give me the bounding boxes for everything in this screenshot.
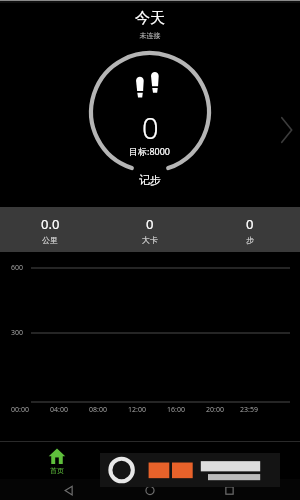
staticText: 12:00: [128, 405, 146, 415]
staticText: 0.0: [41, 215, 60, 233]
staticText: 记步: [139, 173, 161, 187]
staticText: 23:59: [240, 405, 258, 415]
staticText: 00:00: [11, 405, 29, 415]
staticText: 步: [246, 235, 254, 245]
button[interactable]: 首页: [42, 445, 72, 477]
staticText: 大卡: [142, 235, 158, 245]
staticText: 0: [246, 215, 254, 233]
staticText: 300: [11, 328, 24, 338]
staticText: 今天: [0, 9, 300, 28]
staticText: 未连接: [0, 31, 300, 40]
staticText: 公里: [42, 235, 58, 245]
button[interactable]: Step goal ring: [89, 51, 211, 173]
staticText: 0: [146, 215, 154, 233]
button[interactable]: 0.0: [0, 211, 100, 249]
button[interactable]: Next: [274, 108, 300, 152]
button[interactable]: 0: [200, 211, 300, 249]
staticText: 04:00: [50, 405, 68, 415]
staticText: 16:00: [167, 405, 185, 415]
button[interactable]: 0: [100, 211, 200, 249]
staticText: 08:00: [89, 405, 107, 415]
staticText: 目标:8000: [129, 145, 171, 157]
staticText: 0: [142, 108, 159, 147]
staticText: 600: [11, 263, 24, 273]
staticText: 首页: [50, 466, 64, 475]
staticText: 20:00: [206, 405, 224, 415]
